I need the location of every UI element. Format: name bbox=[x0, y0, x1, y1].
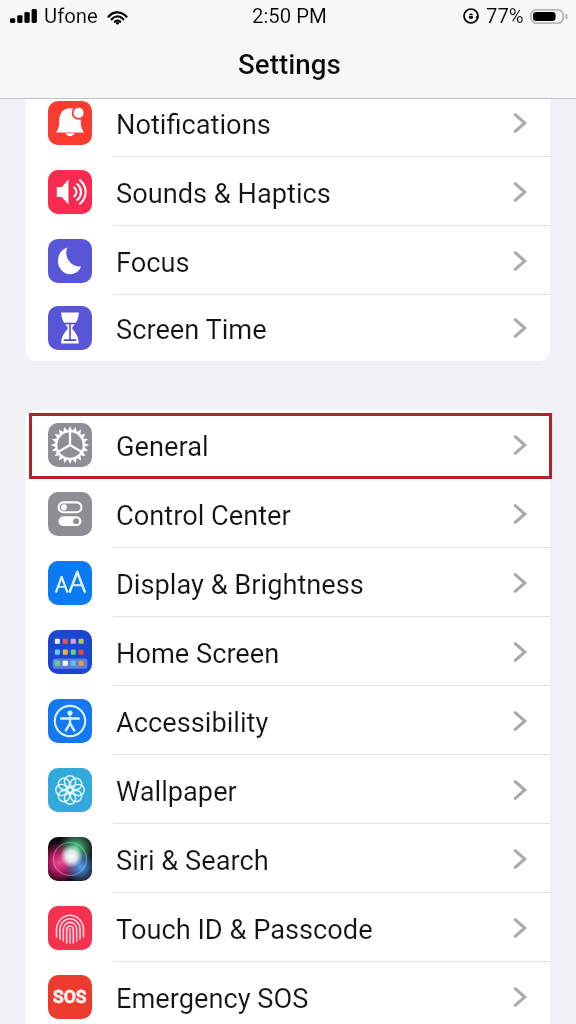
button[interactable]: Accessibility bbox=[25, 686, 550, 755]
staticText: 77% bbox=[486, 4, 524, 28]
staticText: Wallpaper bbox=[116, 776, 237, 808]
button[interactable]: Screen Time bbox=[25, 295, 550, 361]
button[interactable]: Sounds & Haptics bbox=[25, 157, 550, 226]
button[interactable]: Siri & Search bbox=[25, 824, 550, 893]
button[interactable]: Touch ID & Passcode bbox=[25, 893, 550, 962]
button[interactable]: Wallpaper bbox=[25, 755, 550, 824]
button[interactable]: Control Center bbox=[25, 479, 550, 548]
staticText: Notifications bbox=[116, 109, 271, 141]
staticText: SOS bbox=[53, 987, 87, 1008]
staticText: Focus bbox=[116, 247, 190, 279]
staticText: Touch ID & Passcode bbox=[116, 914, 373, 946]
staticText: Home Screen bbox=[116, 638, 280, 670]
staticText: General bbox=[116, 431, 209, 463]
staticText: Accessibility bbox=[116, 707, 269, 739]
button[interactable]: General bbox=[25, 410, 550, 479]
button[interactable]: Focus bbox=[25, 226, 550, 295]
staticText: Control Center bbox=[116, 500, 291, 532]
staticText: 2:50 PM bbox=[252, 4, 327, 28]
staticText: Settings bbox=[238, 48, 341, 81]
staticText: Siri & Search bbox=[116, 845, 269, 877]
staticText: Emergency SOS bbox=[116, 983, 309, 1015]
staticText: Sounds & Haptics bbox=[116, 178, 331, 210]
button[interactable]: Notifications bbox=[25, 99, 550, 157]
staticText: Screen Time bbox=[116, 314, 267, 346]
staticText: Display & Brightness bbox=[116, 569, 364, 601]
button[interactable]: Home Screen bbox=[25, 617, 550, 686]
staticText: Ufone bbox=[44, 4, 98, 28]
button[interactable]: Display & Brightness bbox=[25, 548, 550, 617]
button[interactable]: SOS bbox=[25, 962, 550, 1024]
